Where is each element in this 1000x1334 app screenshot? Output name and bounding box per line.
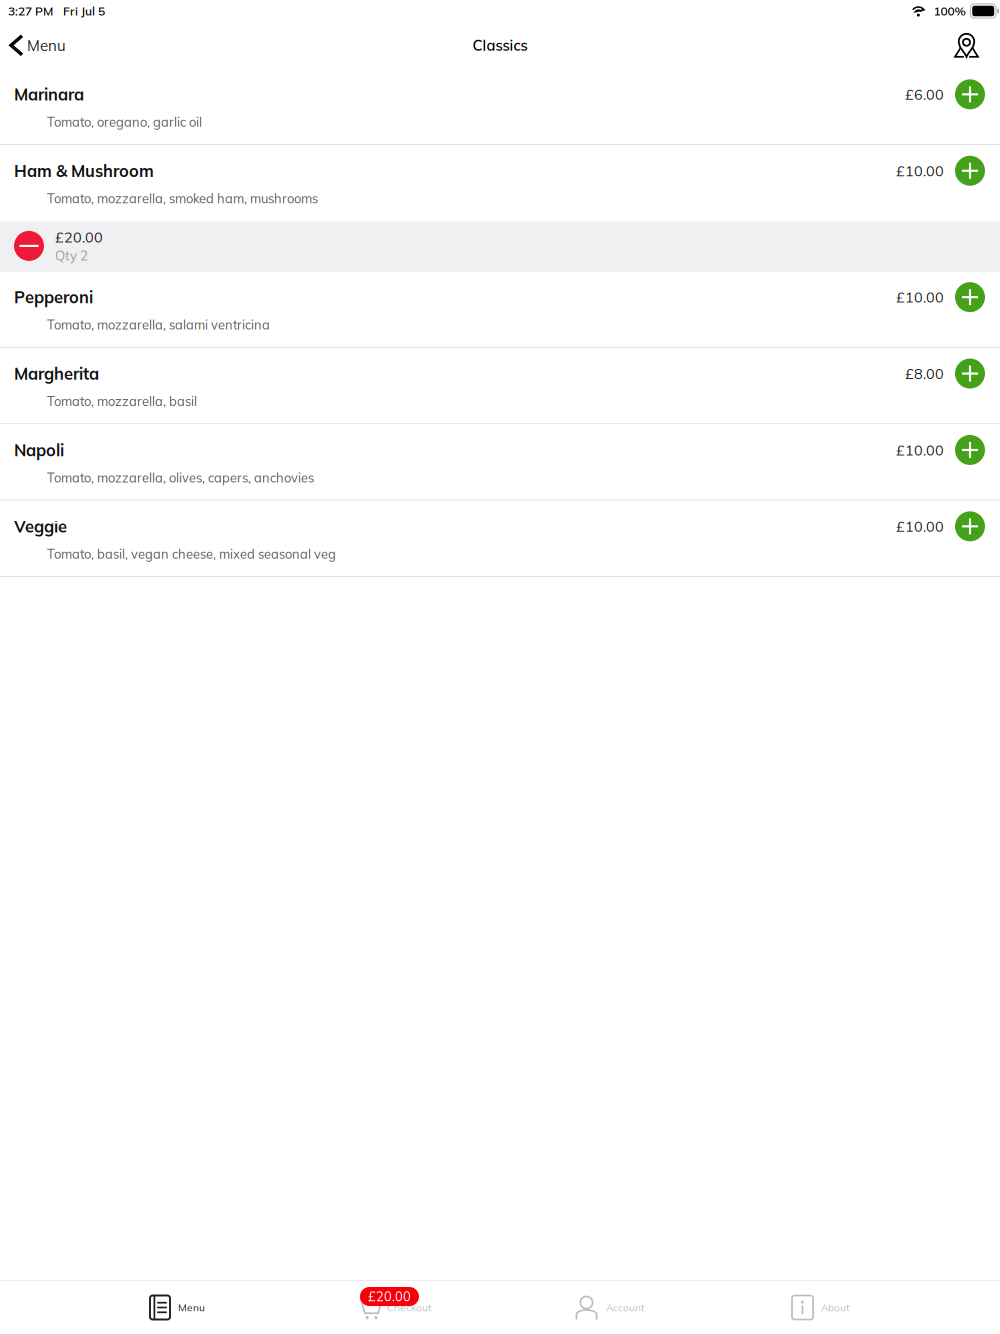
button[interactable]: Margherita <box>0 348 1000 424</box>
button[interactable]: Menu <box>0 23 78 67</box>
staticText: Veggie <box>14 516 67 537</box>
button[interactable]: Ham & Mushroom <box>0 145 1000 221</box>
staticText: £6.00 <box>905 85 944 103</box>
button[interactable]: Napoli <box>0 424 1000 501</box>
staticText: £10.00 <box>896 162 944 180</box>
staticText: Tomato, mozzarella, salami ventricina <box>47 317 270 333</box>
staticText: £20.00 <box>368 1288 411 1305</box>
staticText: Menu <box>27 36 66 55</box>
staticText: £20.00 <box>55 228 103 246</box>
staticText: Marinara <box>14 84 84 105</box>
staticText: Tomato, mozzarella, olives, capers, anch… <box>47 469 314 486</box>
staticText: Menu <box>178 1301 205 1314</box>
button[interactable]: Pepperoni <box>0 271 1000 348</box>
button[interactable]: £20.00 <box>0 221 1000 271</box>
button[interactable]: Account <box>575 1281 645 1334</box>
staticText: Account <box>606 1301 645 1314</box>
button[interactable]: Checkout <box>360 1281 447 1334</box>
staticText: Napoli <box>14 440 64 460</box>
staticText: Tomato, basil, vegan cheese, mixed seaso… <box>47 546 336 562</box>
button[interactable]: Store locator <box>941 23 1000 67</box>
button[interactable]: Veggie <box>0 501 1000 577</box>
staticText: About <box>821 1301 850 1314</box>
staticText: Fri Jul 5 <box>63 3 105 19</box>
staticText: Pepperoni <box>14 287 93 307</box>
staticText: Qty 2 <box>55 247 88 264</box>
staticText: Tomato, mozzarella, basil <box>47 393 197 409</box>
staticText: Checkout <box>387 1301 432 1314</box>
staticText: Margherita <box>14 363 99 384</box>
staticText: £10.00 <box>896 441 944 459</box>
staticText: £8.00 <box>905 364 944 383</box>
button[interactable]: Marinara <box>0 69 1000 145</box>
staticText: Ham & Mushroom <box>14 160 154 181</box>
staticText: 3:27 PM <box>8 3 53 19</box>
button[interactable]: Menu <box>150 1281 205 1334</box>
staticText: Classics <box>472 36 527 54</box>
staticText: 100% <box>933 3 965 19</box>
staticText: £10.00 <box>896 517 944 535</box>
staticText: Tomato, mozzarella, smoked ham, mushroom… <box>47 190 318 206</box>
staticText: Tomato, oregano, garlic oil <box>47 114 202 130</box>
button[interactable]: About <box>792 1281 850 1334</box>
staticText: £10.00 <box>896 288 944 306</box>
